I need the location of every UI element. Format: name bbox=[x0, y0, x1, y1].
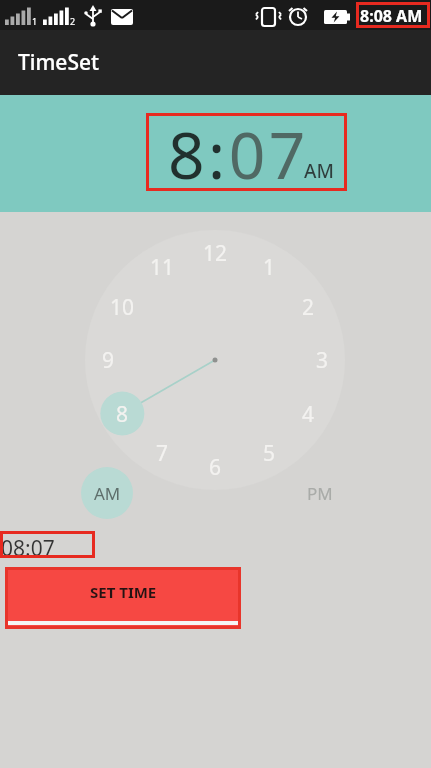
staticText: AM bbox=[94, 482, 121, 505]
button[interactable]: 9 bbox=[88, 345, 128, 375]
staticText: 1 bbox=[32, 15, 38, 27]
button[interactable]: 7 bbox=[142, 438, 182, 468]
button[interactable]: AM bbox=[304, 158, 334, 184]
button[interactable]: PM bbox=[294, 467, 346, 519]
staticText: 2 bbox=[70, 15, 76, 27]
staticText: 10 bbox=[110, 293, 135, 322]
button[interactable]: 3 bbox=[302, 345, 342, 375]
button[interactable]: 12 bbox=[195, 238, 235, 268]
staticText: PM bbox=[307, 482, 333, 505]
button[interactable]: 08:07 bbox=[1, 534, 55, 563]
button[interactable]: 8 bbox=[102, 399, 142, 429]
button[interactable]: 2 bbox=[288, 292, 328, 322]
button[interactable]: 10 bbox=[102, 292, 142, 322]
staticText: 2 bbox=[302, 293, 315, 322]
staticText: 9 bbox=[102, 346, 115, 375]
button[interactable]: 8:07 bbox=[168, 111, 309, 198]
staticText: 11 bbox=[150, 253, 175, 282]
staticText: 8 bbox=[116, 400, 129, 429]
button[interactable]: 5 bbox=[249, 438, 289, 468]
staticText: 3 bbox=[316, 346, 329, 375]
staticText: 5 bbox=[263, 439, 276, 468]
staticText: 4 bbox=[302, 400, 315, 429]
button[interactable]: 11 bbox=[142, 252, 182, 282]
button[interactable]: 1 bbox=[249, 252, 289, 282]
button[interactable]: SET TIME bbox=[5, 567, 241, 629]
staticText: 12 bbox=[203, 239, 228, 268]
button[interactable]: TimeSet bbox=[0, 30, 431, 95]
staticText: SET TIME bbox=[90, 582, 157, 602]
button[interactable]: 6 bbox=[195, 452, 235, 482]
button[interactable]: AM bbox=[81, 467, 133, 519]
staticText: 8:08 AM bbox=[360, 5, 423, 27]
staticText: TimeSet bbox=[18, 48, 100, 77]
staticText: 6 bbox=[209, 453, 222, 482]
button[interactable]: 4 bbox=[288, 399, 328, 429]
staticText: 7 bbox=[156, 439, 169, 468]
staticText: 1 bbox=[263, 253, 276, 282]
